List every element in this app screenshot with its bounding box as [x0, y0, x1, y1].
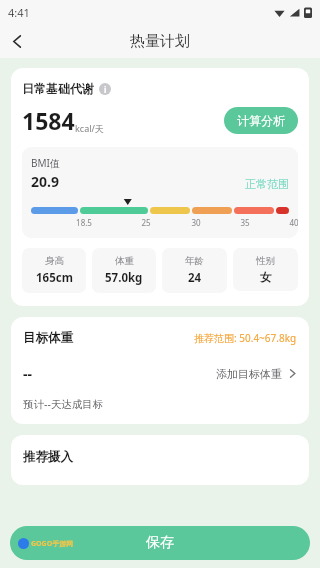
staticText: kcal/天 [75, 122, 104, 134]
staticText: 18.5 [76, 217, 92, 228]
staticText: 57.0kg [105, 270, 143, 286]
staticText: 20.9 [31, 172, 59, 191]
button[interactable]: -- [23, 364, 297, 383]
staticText: 日常基础代谢 [22, 81, 94, 96]
staticText: 24 [188, 270, 202, 286]
button[interactable]: Info [99, 83, 111, 95]
button[interactable]: 身高 [22, 248, 86, 293]
button[interactable]: 计算分析 [224, 107, 298, 134]
staticText: 35 [240, 217, 250, 228]
staticText: 4:41 [8, 5, 30, 20]
staticText: 推荐摄入 [23, 449, 73, 465]
staticText: 目标体重 [23, 330, 73, 346]
staticText: 30 [191, 217, 201, 228]
button[interactable]: 体重 [92, 248, 156, 293]
staticText: 体重 [115, 255, 134, 267]
staticText: 保存 [146, 534, 174, 552]
staticText: 25 [141, 217, 151, 228]
staticText: 性别 [256, 255, 275, 267]
staticText: 预计--天达成目标 [23, 397, 104, 411]
staticText: 身高 [45, 255, 64, 267]
staticText: 推荐范围: 50.4~67.8kg [194, 331, 297, 345]
button[interactable]: Back [0, 24, 34, 58]
staticText: 165cm [36, 270, 73, 286]
staticText: 热量计划 [130, 32, 190, 51]
staticText: 40 [289, 217, 298, 228]
staticText: BMI值 [31, 156, 60, 170]
button[interactable]: 性别 [233, 248, 298, 291]
staticText: 计算分析 [237, 113, 285, 128]
staticText: 女 [260, 270, 272, 284]
staticText: 正常范围 [245, 177, 289, 191]
button[interactable]: 年龄 [162, 248, 227, 293]
staticText: i [104, 84, 107, 95]
staticText: 添加目标体重 [216, 367, 282, 381]
staticText: 1584 [22, 105, 75, 136]
button[interactable]: 保存 [10, 526, 310, 560]
staticText: -- [23, 364, 32, 383]
staticText: 年龄 [185, 255, 204, 267]
staticText: GOGO手游网 [31, 539, 74, 549]
